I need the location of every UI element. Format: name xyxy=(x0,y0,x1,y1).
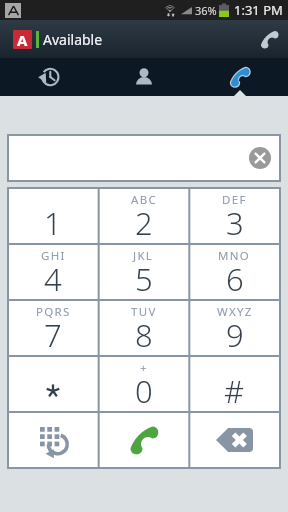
staticText: 36% xyxy=(195,3,217,18)
button[interactable]: GHI xyxy=(8,244,98,300)
staticText: 3 xyxy=(226,202,244,244)
button[interactable]: Clear xyxy=(8,135,280,181)
staticText: TUV xyxy=(131,304,157,320)
button[interactable]: Dialer xyxy=(192,58,288,96)
staticText: A xyxy=(17,30,28,49)
staticText: 4 xyxy=(44,258,62,300)
staticText: 8 xyxy=(135,314,153,356)
staticText: ABC xyxy=(131,192,157,208)
staticText: Available xyxy=(43,30,103,49)
staticText: # xyxy=(224,370,245,412)
button[interactable] xyxy=(8,356,98,412)
button[interactable]: Recents xyxy=(0,58,96,96)
staticText: WXYZ xyxy=(217,304,253,320)
button[interactable]: + xyxy=(98,356,189,412)
button[interactable]: DEF xyxy=(189,188,280,244)
staticText: DEF xyxy=(222,192,247,208)
staticText: 0 xyxy=(135,370,153,412)
staticText: MNO xyxy=(218,248,251,264)
staticText: 1:31 PM xyxy=(234,1,283,19)
button[interactable]: Video call xyxy=(8,412,98,468)
button[interactable]: # xyxy=(189,356,280,412)
button[interactable]: MNO xyxy=(189,244,280,300)
button[interactable]: ABC xyxy=(98,188,189,244)
button[interactable]: Call xyxy=(98,412,189,468)
button[interactable]: JKL xyxy=(98,244,189,300)
button[interactable]: 1 xyxy=(8,188,98,244)
staticText: GHI xyxy=(41,248,66,264)
staticText: 1 xyxy=(44,202,62,244)
button[interactable]: TUV xyxy=(98,300,189,356)
button[interactable]: Call xyxy=(251,21,288,58)
button[interactable]: Backspace xyxy=(189,412,280,468)
staticText: 5 xyxy=(135,258,153,300)
button[interactable]: WXYZ xyxy=(189,300,280,356)
button[interactable]: Clear xyxy=(249,147,271,169)
staticText: PQRS xyxy=(36,304,71,320)
staticText: JKL xyxy=(133,248,154,264)
staticText: 7 xyxy=(44,314,62,356)
button[interactable]: PQRS xyxy=(8,300,98,356)
staticText: + xyxy=(140,360,148,376)
staticText: 2 xyxy=(135,202,153,244)
button[interactable]: Contacts xyxy=(96,58,192,96)
staticText: 9 xyxy=(226,314,244,356)
staticText: 6 xyxy=(226,258,244,300)
